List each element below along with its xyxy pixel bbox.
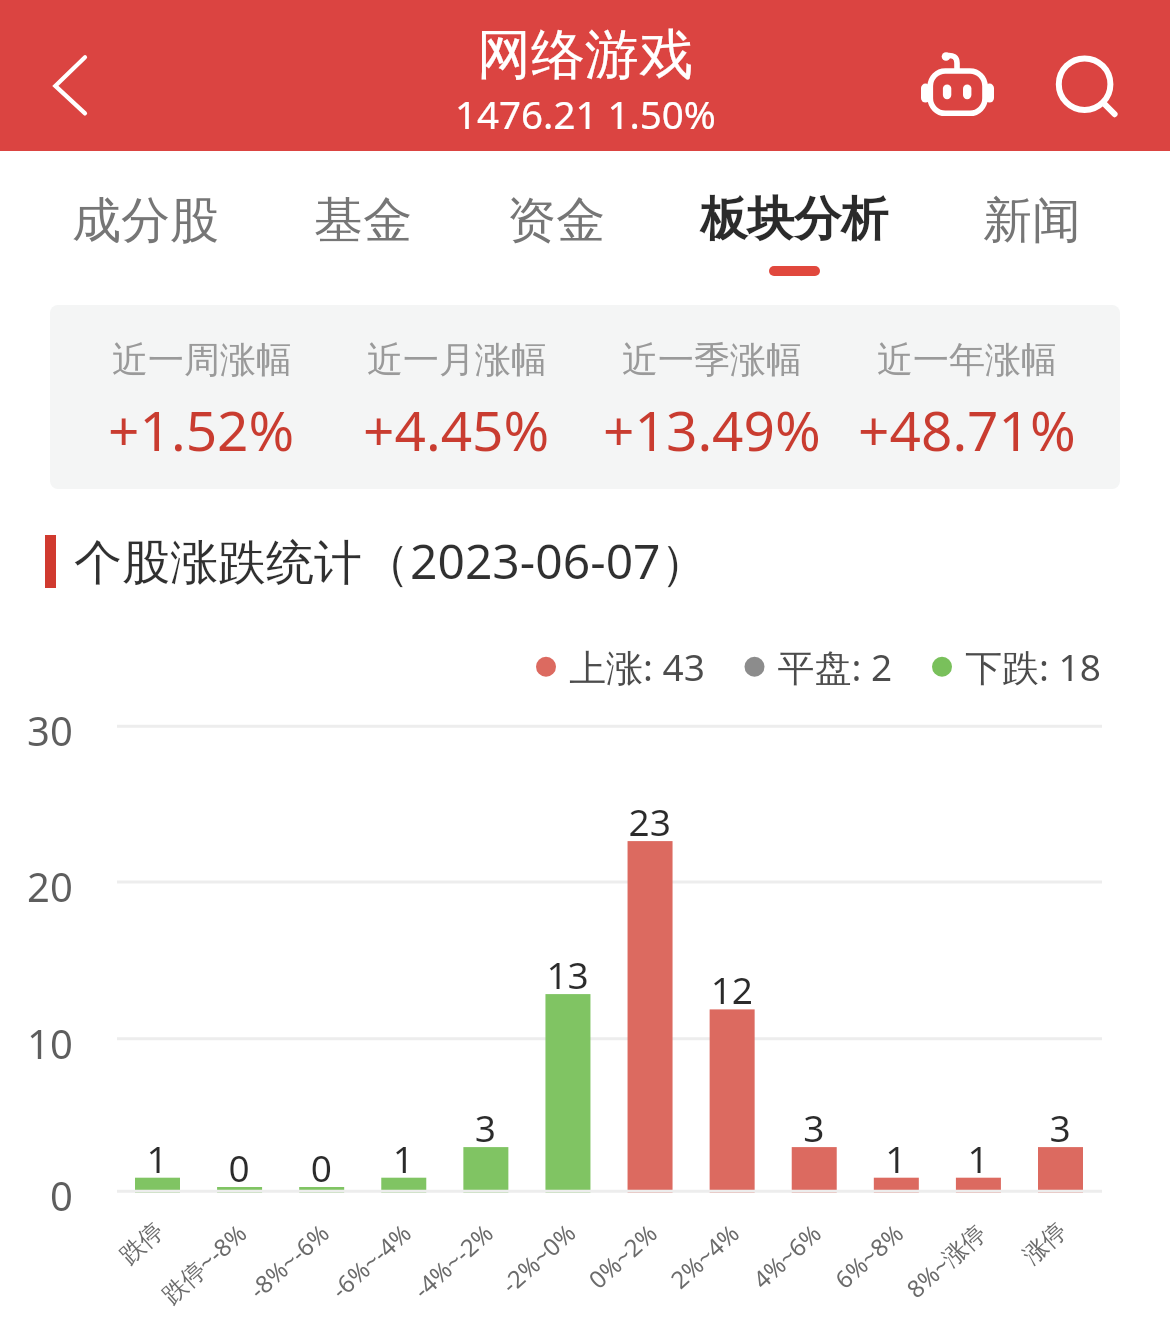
staticText: +1.52% [108,392,295,467]
staticText: +48.71% [858,392,1076,467]
staticText: 网络游戏 [477,21,693,89]
staticText: 近一年涨幅 [877,337,1057,382]
button[interactable]: 基金 [314,151,412,252]
button[interactable]: 资金 [507,151,605,252]
staticText: 近一月涨幅 [367,337,547,382]
staticText: 个股涨跌统计（2023-06-07） [74,528,709,594]
button[interactable]: 成分股 [72,151,219,252]
staticText: +13.49% [603,392,821,467]
staticText: 新闻 [983,190,1081,252]
staticText: 近一季涨幅 [622,337,802,382]
staticText: 成分股 [72,190,219,252]
staticText: 近一周涨幅 [112,337,292,382]
button[interactable]: Search [1025,24,1145,144]
staticText: +4.45% [363,392,550,467]
staticText: 基金 [314,190,412,252]
button[interactable]: 新闻 [983,151,1081,252]
staticText: 板块分析 [700,190,888,249]
button[interactable]: Back [0,0,130,151]
button[interactable]: AI assistant [897,32,1017,152]
staticText: 1476.21 1.50% [455,88,716,140]
staticText: 资金 [507,190,605,252]
button[interactable]: 板块分析 [700,151,888,276]
